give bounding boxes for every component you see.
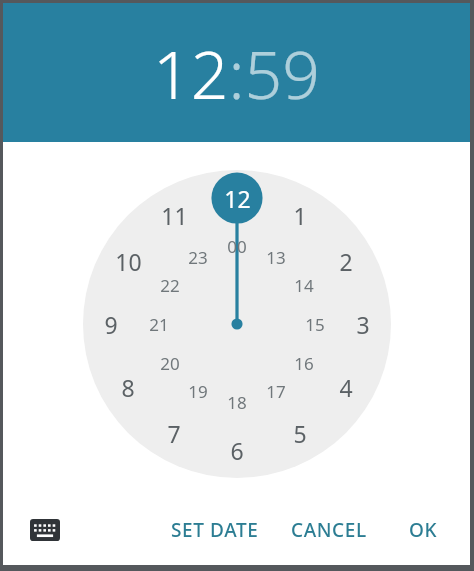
staticText: 18 [227, 391, 247, 414]
staticText: 15 [305, 313, 325, 336]
button[interactable]: 18 [227, 391, 247, 414]
button[interactable]: 12:59 [3, 3, 470, 142]
staticText: 19 [188, 380, 208, 403]
button[interactable]: 1 [293, 200, 307, 231]
button[interactable]: 23 [188, 246, 208, 269]
staticText: 3 [356, 309, 370, 340]
button[interactable]: 6 [230, 435, 244, 466]
staticText: 12:59 [153, 28, 320, 118]
button[interactable]: 15 [305, 313, 325, 336]
staticText: 9 [104, 309, 118, 340]
button[interactable]: 10 [115, 246, 142, 277]
staticText: CANCEL [291, 517, 367, 543]
button[interactable]: 13 [266, 246, 286, 269]
button[interactable]: 3 [356, 309, 370, 340]
button[interactable]: 11 [161, 200, 188, 231]
staticText: 12 [224, 183, 251, 214]
button[interactable]: 17 [266, 380, 286, 403]
button[interactable]: 19 [188, 380, 208, 403]
staticText: 16 [294, 352, 314, 375]
staticText: 5 [293, 418, 307, 449]
button[interactable]: CANCEL [287, 509, 371, 551]
button[interactable]: 2 [339, 246, 353, 277]
staticText: 22 [160, 274, 180, 297]
staticText: 20 [160, 352, 180, 375]
button[interactable]: 9 [104, 309, 118, 340]
staticText: 21 [149, 313, 169, 336]
staticText: 10 [115, 246, 142, 277]
button[interactable]: 22 [160, 274, 180, 297]
staticText: OK [409, 517, 438, 543]
staticText: 7 [167, 418, 181, 449]
staticText: 00 [227, 235, 247, 258]
button[interactable]: 20 [160, 352, 180, 375]
staticText: 8 [121, 372, 135, 403]
staticText: 13 [266, 246, 286, 269]
button[interactable]: 21 [149, 313, 169, 336]
staticText: SET DATE [171, 517, 259, 543]
staticText: 4 [339, 372, 353, 403]
staticText: 1 [293, 200, 307, 231]
staticText: 23 [188, 246, 208, 269]
staticText: 14 [294, 274, 314, 297]
button[interactable]: OK [405, 509, 442, 551]
staticText: 6 [230, 435, 244, 466]
button[interactable]: 7 [167, 418, 181, 449]
button[interactable]: 5 [293, 418, 307, 449]
button[interactable]: 4 [339, 372, 353, 403]
staticText: 2 [339, 246, 353, 277]
staticText: 17 [266, 380, 286, 403]
button[interactable]: 00 [227, 235, 247, 258]
button[interactable]: Switch to text input [25, 510, 65, 550]
staticText: 11 [161, 200, 188, 231]
button[interactable]: SET DATE [167, 509, 263, 551]
button[interactable]: 14 [294, 274, 314, 297]
button[interactable]: 12 [224, 183, 251, 214]
button[interactable]: 16 [294, 352, 314, 375]
button[interactable]: 8 [121, 372, 135, 403]
